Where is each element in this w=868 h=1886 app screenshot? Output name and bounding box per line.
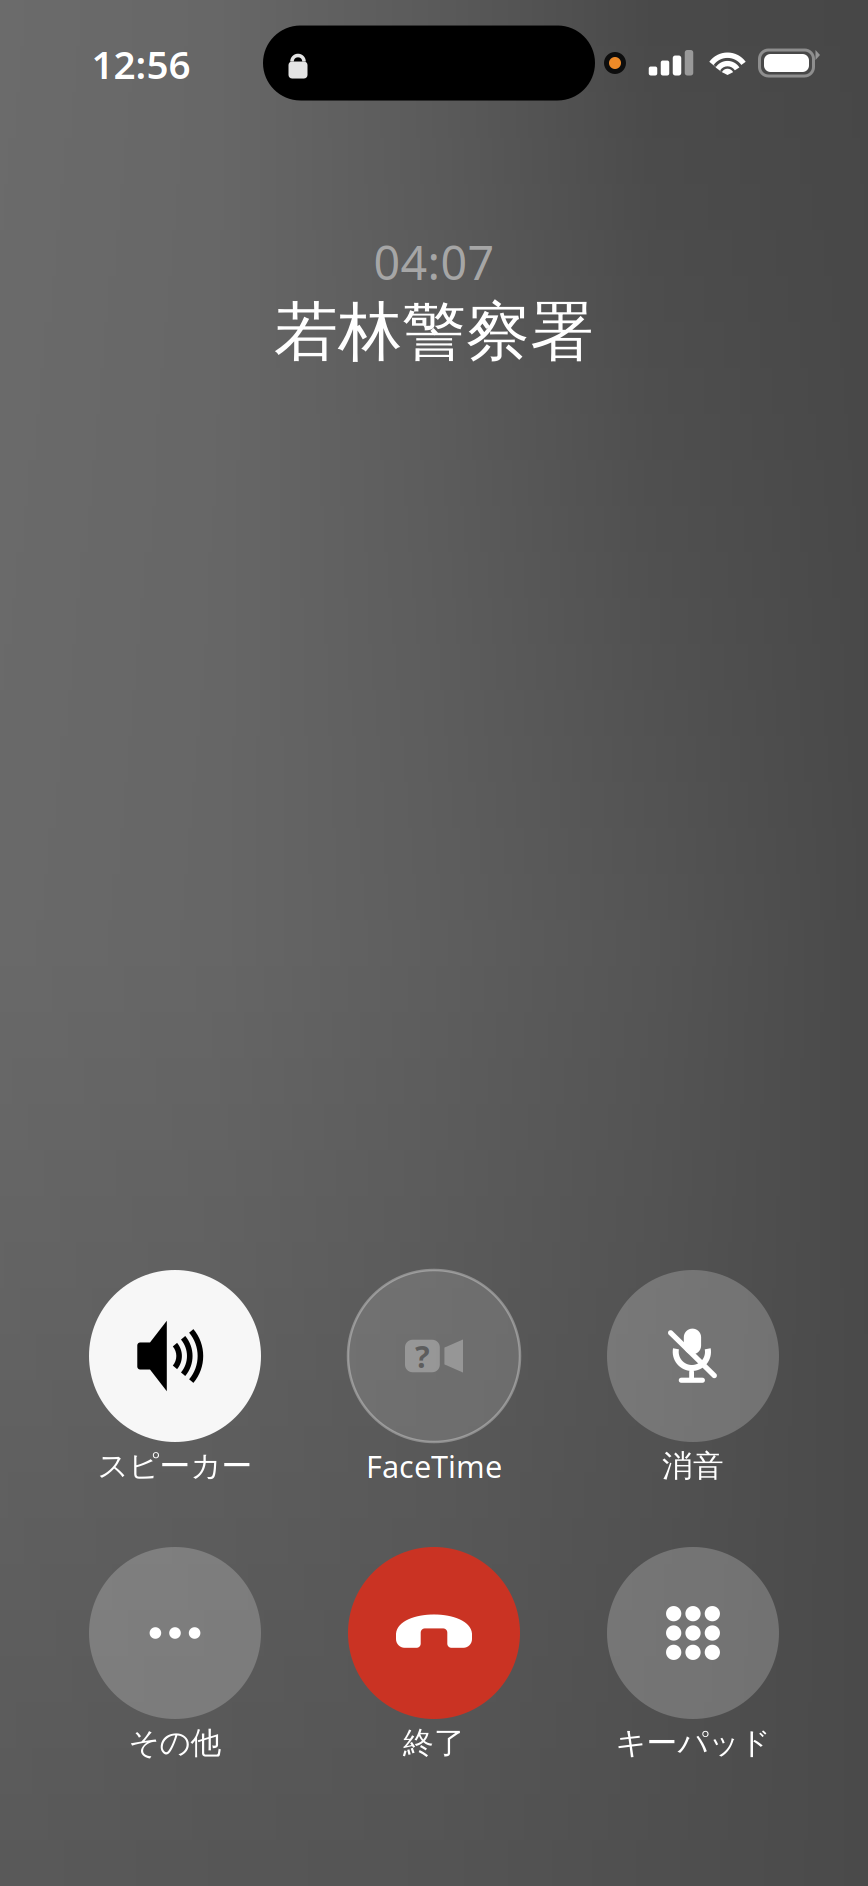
button[interactable]: 消音: [568, 1270, 818, 1488]
staticText: その他: [128, 1724, 221, 1762]
button[interactable]: ?: [309, 1270, 559, 1488]
staticText: 12:56: [91, 38, 190, 90]
staticText: 若林警察署: [274, 293, 594, 372]
staticText: キーパッド: [615, 1724, 770, 1762]
staticText: 終了: [403, 1724, 465, 1762]
button[interactable]: 終了: [309, 1547, 559, 1765]
button[interactable]: その他: [50, 1547, 300, 1765]
staticText: 04:07: [373, 231, 494, 293]
button[interactable]: スピーカー: [50, 1270, 300, 1488]
staticText: FaceTime: [366, 1446, 502, 1486]
staticText: 消音: [662, 1447, 724, 1485]
staticText: スピーカー: [97, 1447, 252, 1485]
staticText: ?: [415, 1336, 430, 1376]
button[interactable]: キーパッド: [568, 1547, 818, 1765]
